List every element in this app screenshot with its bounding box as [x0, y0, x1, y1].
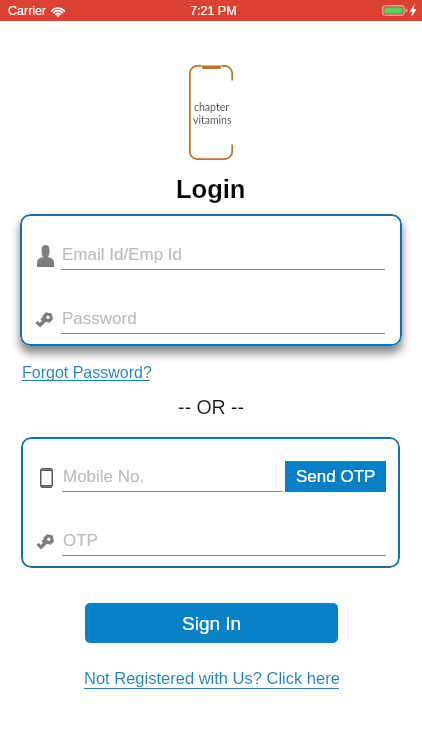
staticText: Password [62, 309, 137, 328]
staticText: OTP [63, 531, 98, 550]
staticText: Mobile No. [63, 467, 145, 486]
button[interactable]: Sign In [85, 603, 338, 643]
staticText: -- OR -- [178, 396, 245, 418]
staticText: vitamins [193, 114, 232, 127]
staticText: Carrier [8, 4, 47, 18]
staticText: chapter [194, 101, 230, 114]
staticText: Send OTP [296, 467, 376, 486]
staticText: Email Id/Emp Id [62, 245, 182, 264]
staticText: 7:21 PM [190, 4, 237, 18]
staticText: Not Registered with Us? Click here [84, 669, 340, 687]
button[interactable]: Not Registered with Us? Click here [81, 666, 342, 694]
staticText: Login [176, 175, 246, 203]
staticText: Forgot Password? [22, 364, 152, 382]
button[interactable]: Forgot Password? [18, 359, 154, 385]
button[interactable]: Send OTP [285, 461, 386, 492]
staticText: Sign In [182, 613, 242, 634]
